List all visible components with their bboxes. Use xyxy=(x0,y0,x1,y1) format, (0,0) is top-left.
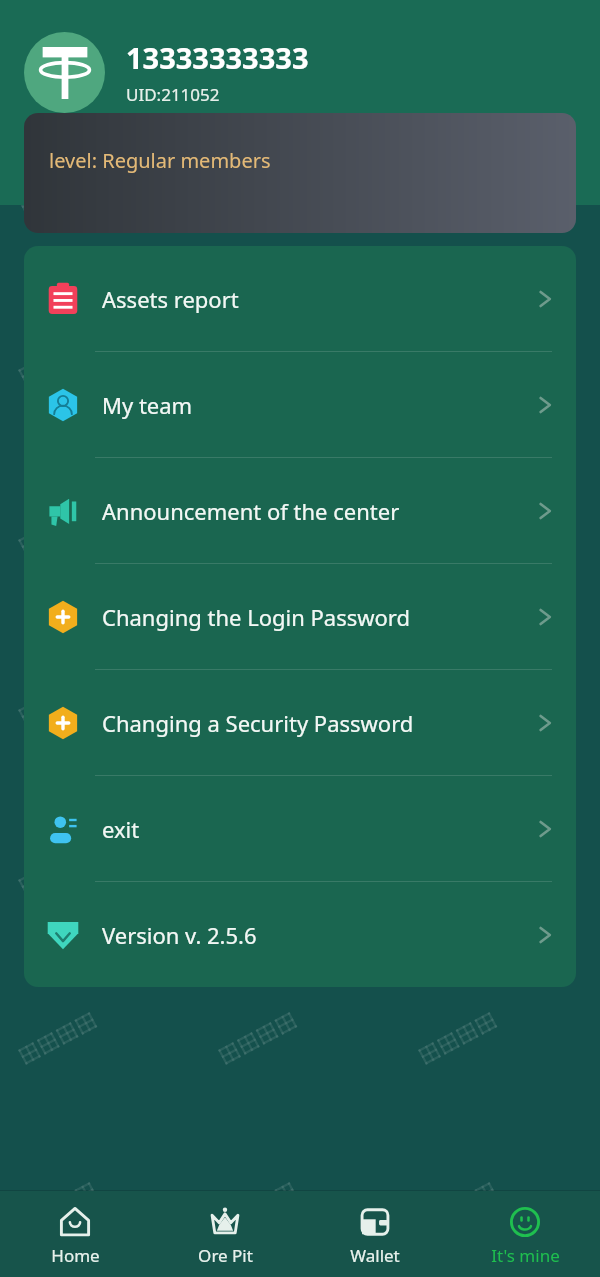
button[interactable]: Ore Pit xyxy=(150,1191,300,1277)
button[interactable]: Changing the Login Password xyxy=(24,564,576,669)
staticText: My team xyxy=(102,390,534,420)
staticText: exit xyxy=(102,814,534,844)
button[interactable]: Version v. 2.5.6 xyxy=(24,882,576,987)
button[interactable]: exit xyxy=(24,776,576,881)
button[interactable]: It's mine xyxy=(450,1191,600,1277)
staticText: Assets report xyxy=(102,284,534,314)
button[interactable]: My team xyxy=(24,352,576,457)
button[interactable]: Announcement of the center xyxy=(24,458,576,563)
button[interactable]: Changing a Security Password xyxy=(24,670,576,775)
staticText: level: Regular members xyxy=(49,147,271,174)
staticText: Changing the Login Password xyxy=(102,602,534,632)
button[interactable]: Wallet xyxy=(300,1191,450,1277)
staticText: 13333333333 xyxy=(126,38,309,77)
staticText: Ore Pit xyxy=(198,1244,253,1267)
staticText: UID:211052 xyxy=(126,83,220,106)
staticText: Home xyxy=(51,1244,100,1267)
staticText: It's mine xyxy=(491,1244,560,1267)
staticText: Version v. 2.5.6 xyxy=(102,920,534,950)
staticText: Changing a Security Password xyxy=(102,708,534,738)
button[interactable]: Home xyxy=(0,1191,150,1277)
button[interactable]: Assets report xyxy=(24,246,576,351)
staticText: Announcement of the center xyxy=(102,496,534,526)
button[interactable]: level: Regular members xyxy=(24,113,576,233)
staticText: Wallet xyxy=(350,1244,400,1267)
button[interactable]: Avatar xyxy=(24,32,105,113)
